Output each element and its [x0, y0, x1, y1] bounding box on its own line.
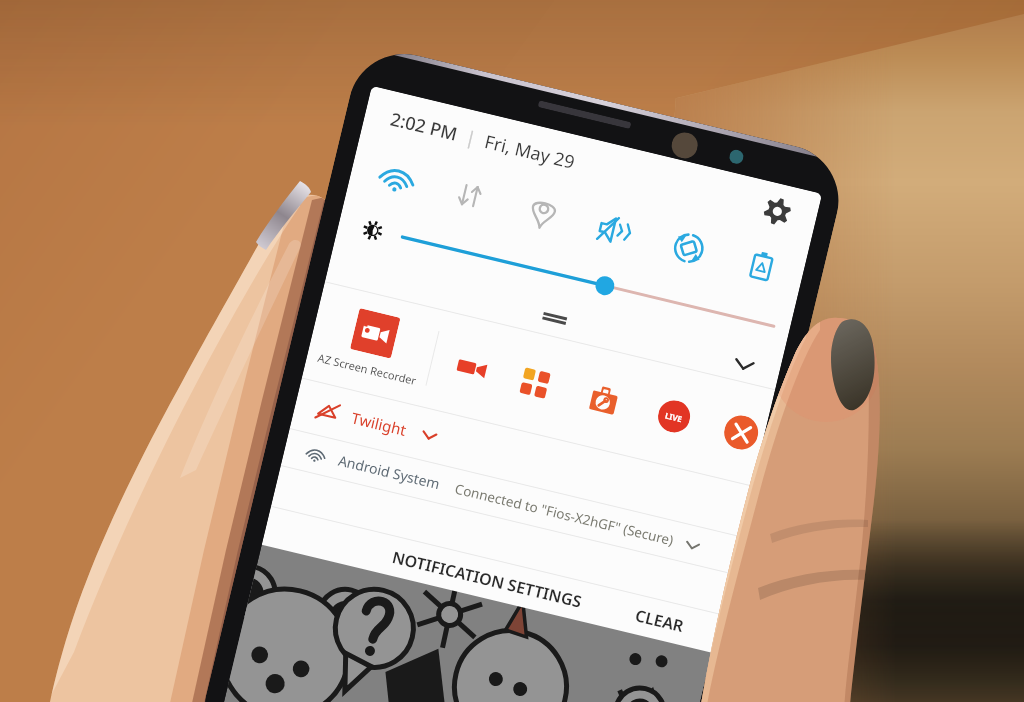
button[interactable]: Twilight [290, 378, 752, 536]
staticText: AZ Screen Recorder [316, 350, 418, 388]
button[interactable]: Close [721, 412, 762, 453]
button[interactable]: NOTIFICATION SETTINGS [385, 541, 589, 617]
button[interactable]: Wi-Fi [353, 140, 440, 216]
button[interactable]: Settings [750, 184, 803, 237]
staticText: LIVE [664, 409, 684, 424]
button[interactable]: Live [655, 397, 693, 436]
button[interactable]: Expand [723, 343, 766, 385]
other: Brightness [360, 218, 385, 243]
staticText: Fri, May 29 [482, 129, 577, 175]
button[interactable]: Tools [582, 378, 626, 421]
button[interactable]: CLEAR [628, 599, 691, 642]
staticText: Twilight [350, 407, 409, 440]
button[interactable]: AZ Screen Recorder [306, 299, 439, 390]
button[interactable]: Apps [515, 362, 556, 403]
staticText: | [454, 122, 488, 153]
staticText: Connected to "Fios-X2hGF" (Secure) [453, 480, 676, 550]
staticText: 2:02 PM [388, 106, 460, 147]
button[interactable]: Mobile data [426, 158, 513, 233]
staticText: CLEAR [633, 604, 686, 637]
button[interactable]: Sound mode [572, 193, 659, 269]
staticText: Android System [336, 451, 442, 493]
button[interactable]: Record video [450, 346, 493, 390]
button[interactable]: Location [499, 175, 586, 251]
button[interactable]: Android System [281, 429, 740, 573]
button[interactable] [400, 225, 777, 338]
button[interactable]: Auto rotate [645, 210, 732, 286]
staticText: NOTIFICATION SETTINGS [390, 546, 584, 613]
button[interactable]: Power saving [718, 228, 805, 304]
